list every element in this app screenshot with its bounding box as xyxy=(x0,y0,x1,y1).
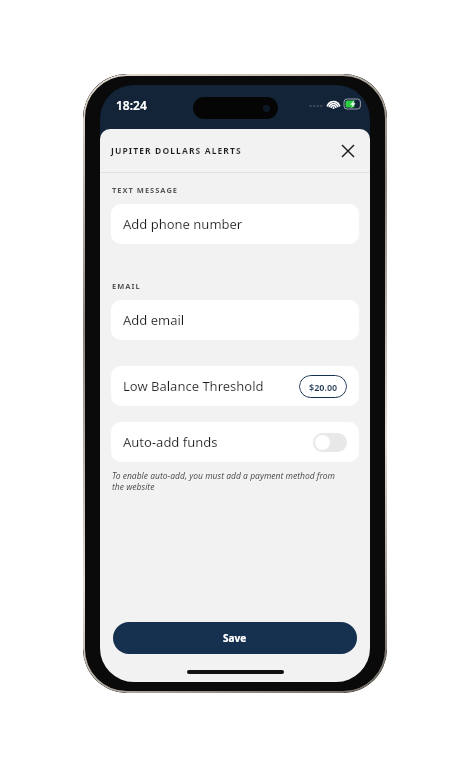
staticText: Save xyxy=(223,631,247,645)
button[interactable]: Low Balance Threshold xyxy=(111,366,359,406)
staticText: JUPITER DOLLARS ALERTS xyxy=(111,145,242,157)
staticText: $20.00 xyxy=(309,381,338,393)
button[interactable]: Add email xyxy=(111,300,359,340)
button[interactable]: Add phone number xyxy=(111,204,359,244)
staticText: Add email xyxy=(123,311,185,329)
button[interactable]: Close xyxy=(337,140,359,162)
staticText: 18:24 xyxy=(116,97,147,113)
staticText: Low Balance Threshold xyxy=(123,377,264,395)
staticText: To enable auto-add, you must add a payme… xyxy=(112,470,342,492)
staticText: Add phone number xyxy=(123,215,243,233)
staticText: Auto-add funds xyxy=(123,433,218,451)
staticText: EMAIL xyxy=(112,281,141,291)
button[interactable]: Auto-add funds xyxy=(111,422,359,462)
staticText: TEXT MESSAGE xyxy=(112,185,179,195)
button[interactable]: Save xyxy=(113,622,357,654)
